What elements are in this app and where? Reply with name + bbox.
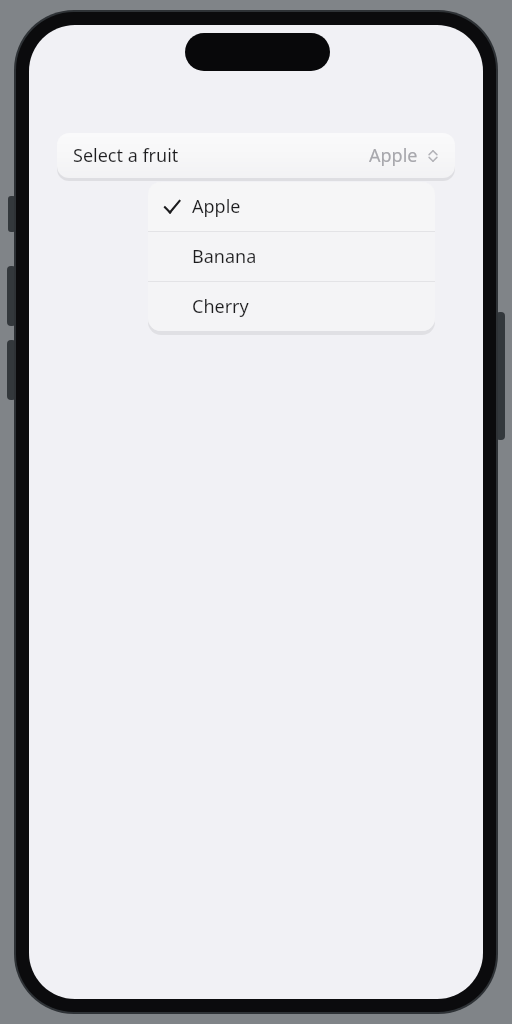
button[interactable]: Select a fruit — [57, 133, 455, 178]
other: Change selection — [425, 148, 441, 164]
button[interactable]: Apple — [148, 182, 435, 231]
staticText: Apple — [192, 194, 241, 219]
button[interactable]: Banana — [148, 232, 435, 281]
staticText: Apple — [369, 143, 418, 168]
staticText: Select a fruit — [73, 143, 179, 168]
staticText: Cherry — [192, 294, 249, 319]
staticText: Banana — [192, 244, 257, 269]
button[interactable]: Cherry — [148, 282, 435, 331]
